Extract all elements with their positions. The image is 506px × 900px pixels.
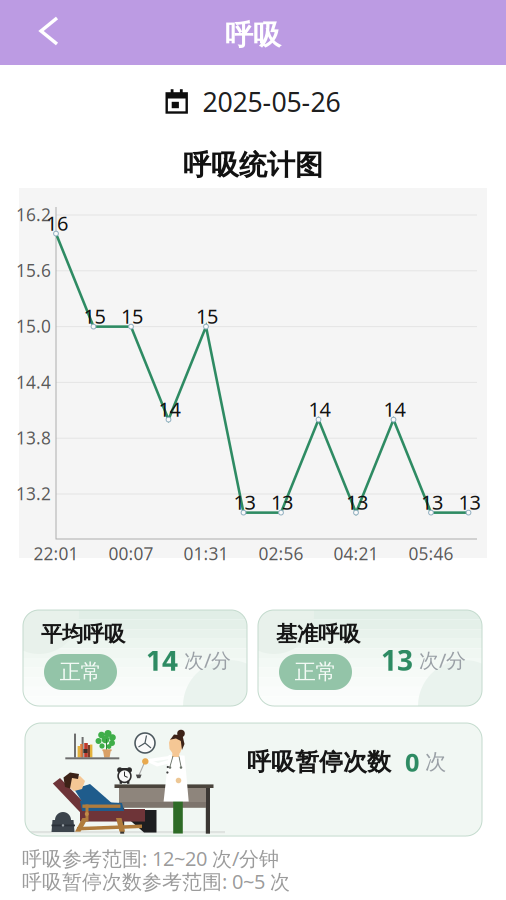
staticText: 15.6 bbox=[16, 259, 51, 282]
staticText: 13 bbox=[381, 641, 413, 679]
staticText: 15 bbox=[121, 303, 143, 329]
button[interactable]: 平均呼吸 bbox=[23, 610, 247, 706]
staticText: 13.8 bbox=[16, 426, 51, 449]
staticText: 正常 bbox=[59, 659, 101, 685]
staticText: 01:31 bbox=[183, 542, 228, 565]
staticText: 13 bbox=[233, 489, 255, 515]
staticText: 呼吸暂停次数 bbox=[247, 747, 391, 777]
staticText: 15.0 bbox=[16, 315, 51, 338]
staticText: 13 bbox=[346, 489, 368, 515]
staticText: 正常 bbox=[294, 659, 336, 685]
staticText: 05:46 bbox=[408, 542, 453, 565]
staticText: 13 bbox=[458, 489, 480, 515]
staticText: 13.2 bbox=[16, 482, 51, 505]
staticText: 次/分 bbox=[413, 647, 466, 673]
staticText: 00:07 bbox=[108, 542, 153, 565]
staticText: 16.2 bbox=[16, 203, 51, 226]
button[interactable]: 呼吸暂停次数 bbox=[25, 723, 482, 836]
button[interactable]: 基准呼吸 bbox=[258, 610, 482, 706]
staticText: 次/分 bbox=[178, 647, 231, 673]
staticText: 14 bbox=[146, 641, 178, 679]
staticText: 15 bbox=[83, 303, 105, 329]
staticText: 呼吸统计图 bbox=[183, 148, 323, 182]
staticText: 平均呼吸 bbox=[41, 621, 125, 647]
staticText: 13 bbox=[421, 489, 443, 515]
button[interactable]: Back bbox=[27, 4, 71, 58]
staticText: 15 bbox=[196, 303, 218, 329]
staticText: 14 bbox=[158, 396, 180, 422]
staticText: 呼吸参考范围: 12~20 次/分钟 bbox=[22, 845, 279, 872]
staticText: 16 bbox=[46, 210, 68, 236]
staticText: 0 bbox=[391, 745, 419, 779]
staticText: 呼吸暂停次数参考范围: 0~5 次 bbox=[22, 868, 290, 895]
staticText: 13 bbox=[271, 489, 293, 515]
staticText: 基准呼吸 bbox=[276, 621, 360, 647]
staticText: 14 bbox=[308, 396, 330, 422]
staticText: 2025-05-26 bbox=[188, 84, 340, 119]
staticText: 14 bbox=[383, 396, 405, 422]
staticText: 14.4 bbox=[16, 370, 51, 393]
staticText: 呼吸 bbox=[225, 18, 281, 52]
staticText: 22:01 bbox=[33, 542, 78, 565]
staticText: 02:56 bbox=[258, 542, 303, 565]
staticText: 次 bbox=[419, 749, 446, 775]
staticText: 04:21 bbox=[333, 542, 378, 565]
